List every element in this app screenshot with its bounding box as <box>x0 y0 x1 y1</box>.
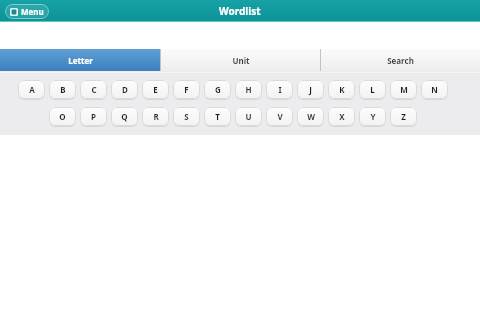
button[interactable]: P <box>80 107 107 126</box>
staticText: M <box>400 84 408 95</box>
button[interactable]: Search <box>321 49 480 71</box>
button[interactable]: B <box>49 80 76 99</box>
button[interactable]: M <box>390 80 417 99</box>
button[interactable]: A <box>18 80 45 99</box>
button[interactable]: I <box>266 80 293 99</box>
button[interactable]: E <box>142 80 169 99</box>
button[interactable]: U <box>235 107 262 126</box>
staticText: R <box>153 111 159 122</box>
staticText: G <box>215 84 221 95</box>
button[interactable]: Letter <box>0 49 160 71</box>
staticText: K <box>339 84 345 95</box>
button[interactable]: R <box>142 107 169 126</box>
button[interactable]: S <box>173 107 200 126</box>
staticText: Menu <box>21 6 44 17</box>
staticText: W <box>307 111 315 122</box>
button[interactable]: N <box>421 80 448 99</box>
button[interactable]: Z <box>390 107 417 126</box>
staticText: Y <box>370 111 376 122</box>
button[interactable]: Y <box>359 107 386 126</box>
button[interactable]: K <box>328 80 355 99</box>
button[interactable]: J <box>297 80 324 99</box>
button[interactable]: T <box>204 107 231 126</box>
staticText: X <box>339 111 345 122</box>
staticText: O <box>59 111 66 122</box>
button[interactable]: Menu <box>5 4 49 19</box>
button[interactable]: L <box>359 80 386 99</box>
staticText: C <box>91 84 97 95</box>
staticText: I <box>278 84 282 95</box>
staticText: Unit <box>232 55 250 66</box>
staticText: D <box>122 84 128 95</box>
button[interactable]: W <box>297 107 324 126</box>
staticText: A <box>29 84 35 95</box>
staticText: L <box>370 84 375 95</box>
staticText: N <box>431 84 438 95</box>
staticText: Q <box>121 111 128 122</box>
staticText: F <box>184 84 189 95</box>
staticText: Wordlist <box>219 4 261 18</box>
staticText: Search <box>387 55 414 66</box>
button[interactable]: C <box>80 80 107 99</box>
staticText: E <box>153 84 158 95</box>
staticText: U <box>245 111 252 122</box>
staticText: T <box>215 111 220 122</box>
staticText: P <box>91 111 96 122</box>
button[interactable]: H <box>235 80 262 99</box>
button[interactable]: Q <box>111 107 138 126</box>
staticText: V <box>277 111 283 122</box>
staticText: Letter <box>68 55 93 66</box>
staticText: J <box>309 84 312 95</box>
staticText: H <box>245 84 252 95</box>
button[interactable]: F <box>173 80 200 99</box>
button[interactable]: D <box>111 80 138 99</box>
staticText: S <box>184 111 189 122</box>
button[interactable]: G <box>204 80 231 99</box>
staticText: Z <box>401 111 406 122</box>
button[interactable]: Unit <box>161 49 320 71</box>
button[interactable]: V <box>266 107 293 126</box>
staticText: B <box>60 84 66 95</box>
button[interactable]: O <box>49 107 76 126</box>
button[interactable]: X <box>328 107 355 126</box>
